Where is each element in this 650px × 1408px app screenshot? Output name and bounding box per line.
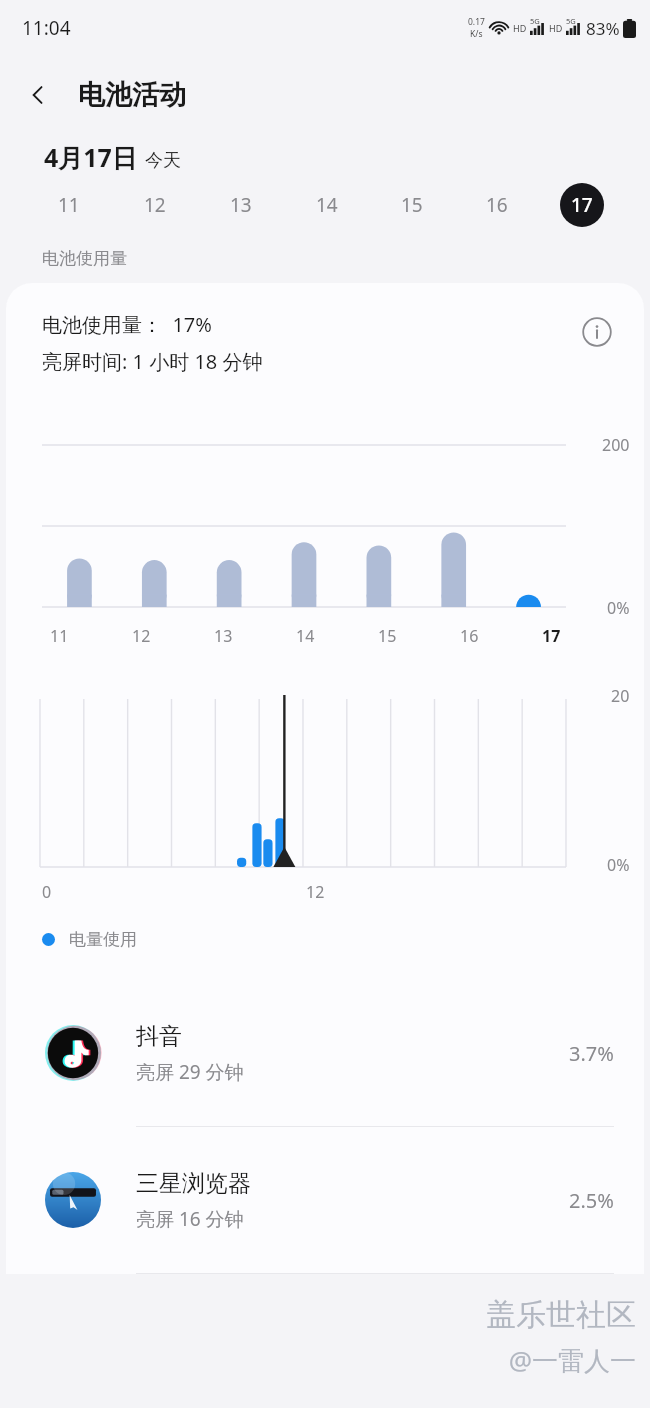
staticText: 电池使用量 [42,248,127,269]
button[interactable]: 三星浏览器 [6,1127,644,1273]
button[interactable]: Information [576,311,618,353]
staticText: 17 [571,192,593,218]
staticText: 20 [611,685,630,707]
staticText: 11:04 [22,15,71,41]
staticText: 13 [230,192,252,218]
staticText: 4月17日 [44,140,137,174]
staticText: K/s [470,28,483,40]
staticText: 16 [486,192,508,218]
staticText: 17 [542,625,561,647]
staticText: 11 [58,192,80,218]
button[interactable]: 14 [284,174,369,236]
staticText: 16 [460,625,479,647]
staticText: 83% [586,17,620,40]
staticText: 12 [144,192,166,218]
staticText: @一雷人一 [508,1342,636,1378]
staticText: 0 [42,881,52,903]
staticText: 13 [214,625,233,647]
button[interactable]: 11 [26,174,112,236]
staticText: 今天 [145,149,181,172]
button[interactable]: 12 [112,174,198,236]
staticText: 0.17 [468,16,485,28]
staticText: 11 [50,625,69,647]
staticText: HD [549,22,563,34]
staticText: 15 [378,625,397,647]
staticText: 200 [602,434,630,456]
staticText: 盖乐世社区 [486,1296,636,1334]
staticText: 0% [607,597,630,619]
staticText: 14 [316,192,338,218]
staticText: 14 [296,625,315,647]
button[interactable]: Back [14,71,62,119]
staticText: 电池使用量： 17% [42,311,212,338]
staticText: 12 [306,881,325,903]
button[interactable]: 17 [539,174,624,236]
staticText: 亮屏 29 分钟 [136,1059,244,1085]
button[interactable]: 16 [454,174,539,236]
staticText: 电池活动 [78,78,186,112]
staticText: 三星浏览器 [136,1169,251,1198]
staticText: 5G [566,16,576,26]
staticText: 2.5% [569,1187,614,1214]
staticText: 0% [607,854,630,876]
staticText: 5G [530,16,540,26]
staticText: 电量使用 [69,929,137,950]
staticText: HD [513,22,527,34]
staticText: 亮屏 16 分钟 [136,1206,244,1232]
staticText: 15 [401,192,423,218]
staticText: 亮屏时间: 1 小时 18 分钟 [42,348,263,375]
staticText: 12 [132,625,151,647]
button[interactable]: 抖音 [6,980,644,1126]
staticText: 3.7% [569,1040,614,1067]
button[interactable]: 15 [369,174,454,236]
button[interactable]: 13 [198,174,284,236]
staticText: 抖音 [136,1022,182,1051]
